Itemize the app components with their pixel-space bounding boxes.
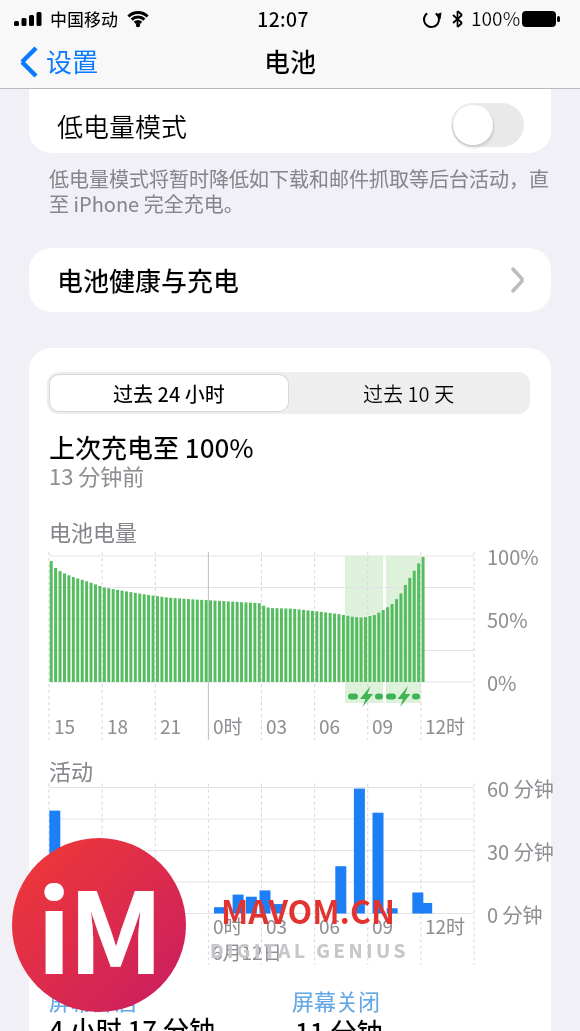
staticText: 中国移动 [50,6,118,31]
staticText: DIGITAL GENIUS [210,936,409,964]
staticText: 100% [487,542,539,571]
staticText: 13 分钟前 [49,459,145,491]
staticText: 上次充电至 100% [49,428,254,466]
staticText: 至 iPhone 完全充电。 [49,189,244,218]
staticText: 50% [487,605,528,634]
button[interactable] [49,975,209,1015]
staticText: 100% [471,4,521,32]
staticText: 活动 [49,754,94,786]
staticText: 低电量模式 [57,107,188,145]
staticText: 09 [372,712,394,740]
staticText: 12时 [425,912,466,940]
staticText: 6月12日 [212,938,282,966]
staticText: 过去 24 小时 [113,379,225,408]
staticText: 03 [266,912,288,940]
staticText: 06 [319,912,341,940]
staticText: 21 [160,712,182,740]
staticText: 11 分钟 [295,1012,383,1031]
staticText: 06 [319,712,341,740]
staticText: 12:07 [257,4,309,33]
button[interactable] [29,89,551,153]
staticText: 15 [54,712,76,740]
staticText: 屏幕开启 [49,984,138,1016]
button[interactable] [20,40,140,88]
button[interactable] [50,375,288,411]
staticText: 09 [372,912,394,940]
staticText: 设置 [46,42,99,80]
staticText: MAVOM.CN [221,887,395,933]
staticText: 12时 [425,712,466,740]
staticText: 电池 [264,42,317,80]
staticText: 低电量模式将暂时降低如下载和邮件抓取等后台活动，直 [49,164,549,193]
staticText: iM [37,844,161,1006]
staticText: 03 [266,712,288,740]
staticText: 电池健康与充电 [57,261,240,299]
staticText: 60 分钟 [487,774,554,803]
button[interactable] [451,103,524,147]
staticText: 0 分钟 [487,900,543,929]
staticText: 0时 [213,912,243,940]
staticText: 4 小时 17 分钟 [49,1010,216,1031]
staticText: 电池电量 [49,515,138,547]
staticText: 0时 [213,712,243,740]
button[interactable] [290,374,530,412]
staticText: 屏幕关闭 [292,984,381,1016]
staticText: 0% [487,668,517,697]
staticText: 过去 10 天 [363,379,455,408]
staticText: 18 [107,712,129,740]
staticText: 30 分钟 [487,837,554,866]
button[interactable] [29,248,551,312]
